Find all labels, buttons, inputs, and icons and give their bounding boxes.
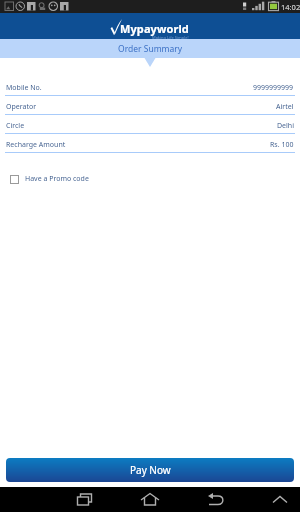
staticText: Mypayworld: [120, 21, 189, 36]
staticText: Making Life Simple!: [152, 35, 189, 40]
button[interactable]: Pay Now: [6, 458, 294, 482]
button[interactable]: Mobile No.: [0, 77, 300, 96]
staticText: Operator: [6, 102, 37, 112]
staticText: 14:02: [281, 2, 300, 12]
staticText: Circle: [6, 121, 25, 131]
staticText: Delhi: [277, 121, 294, 131]
staticText: Recharge Amount: [6, 140, 66, 150]
button[interactable]: Operator: [0, 96, 300, 115]
staticText: 9999999999: [253, 83, 294, 93]
button[interactable]: Recharge Amount: [0, 134, 300, 153]
staticText: Have a Promo code: [25, 174, 89, 184]
button[interactable]: Home: [75, 487, 150, 512]
staticText: Order Summary: [118, 43, 183, 55]
button[interactable]: Back: [150, 487, 225, 512]
button[interactable]: Circle: [0, 115, 300, 134]
staticText: Mobile No.: [6, 83, 42, 93]
staticText: Rs. 100: [270, 140, 294, 150]
button[interactable]: Hide keyboard: [225, 487, 300, 512]
staticText: Airtel: [276, 102, 294, 112]
button[interactable]: Have a Promo code: [10, 174, 300, 184]
staticText: Pay Now: [130, 463, 171, 477]
